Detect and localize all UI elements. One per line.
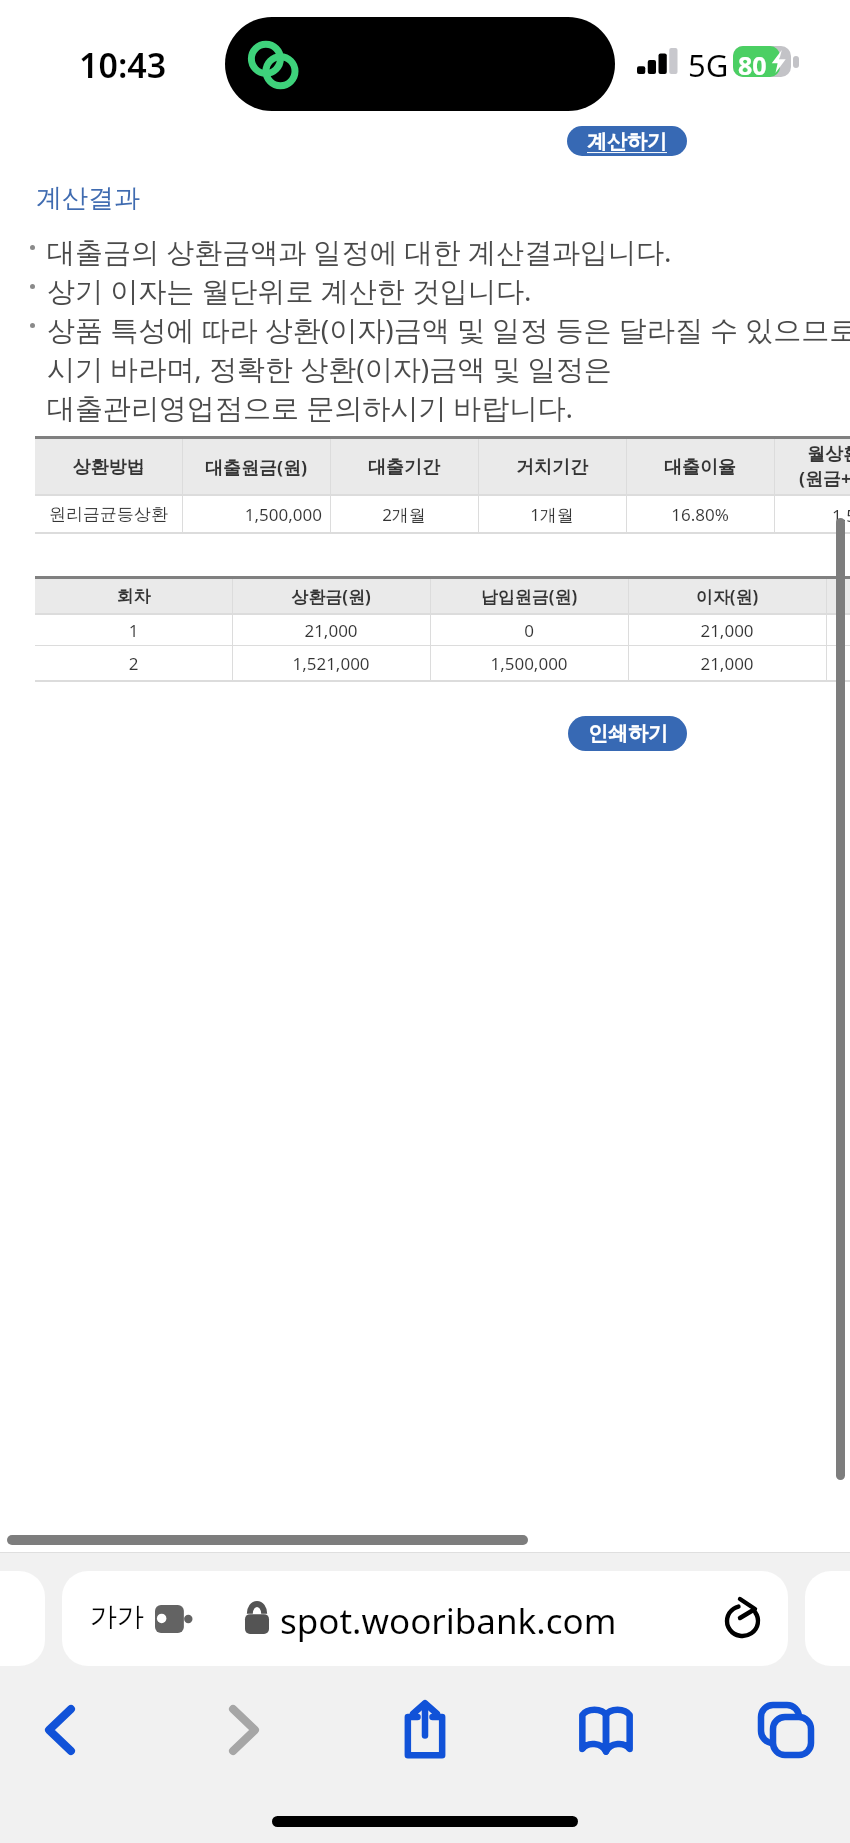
staticText: 대출기간 <box>330 456 478 479</box>
staticText: 16.80% <box>626 503 774 526</box>
staticText: 대출금의 상환금액과 일정에 대한 계산결과입니다. <box>47 232 672 270</box>
staticText: 시기 바라며, 정확한 상환(이자)금액 및 일정은 <box>47 349 612 387</box>
staticText: 원리금균등상환 <box>35 504 182 525</box>
other: Extensions <box>155 1605 192 1633</box>
staticText: 1 <box>35 619 232 642</box>
button[interactable]: 인쇄하기 <box>568 716 687 751</box>
staticText: 21,000 <box>628 652 826 675</box>
button[interactable]: Back <box>16 1686 104 1774</box>
staticText: 0 <box>430 619 628 642</box>
staticText: 상품 특성에 따라 상환(이자)금액 및 일정 등은 달라질 수 있으므로 <box>47 310 850 348</box>
staticText: 계산하기 <box>587 129 667 154</box>
button[interactable]: 가가 <box>62 1571 788 1666</box>
staticText: 2 <box>35 652 232 675</box>
staticText: 21,000 <box>232 619 430 642</box>
staticText: 5G <box>688 44 729 86</box>
staticText: 거치기간 <box>478 456 626 479</box>
staticText: 대출원금(원) <box>182 455 330 480</box>
staticText: 2개월 <box>330 503 478 526</box>
staticText: 1개월 <box>478 503 626 526</box>
staticText: 계산결과 <box>36 182 140 215</box>
staticText: 가가 <box>90 1600 144 1634</box>
button[interactable]: Forward <box>200 1686 288 1774</box>
staticText: 대출관리영업점으로 문의하시기 바랍니다. <box>47 388 574 426</box>
other: Reload <box>723 1596 765 1640</box>
button[interactable]: Bookmarks <box>562 1686 650 1774</box>
staticText: 10:43 <box>79 42 167 88</box>
staticText: 월상환금 <box>807 443 850 466</box>
staticText: 1,5 <box>832 504 850 527</box>
button[interactable]: Share <box>381 1686 469 1774</box>
staticText: 이자(원) <box>628 585 826 608</box>
staticText: 1,521,000 <box>232 652 430 675</box>
staticText: 1,500,000 <box>182 503 322 526</box>
staticText: 1,500,000 <box>430 652 628 675</box>
button[interactable]: Tabs <box>742 1686 830 1774</box>
staticText: 회차 <box>35 586 232 607</box>
staticText: 납입원금(원) <box>430 585 628 608</box>
button[interactable]: 계산하기 <box>567 126 687 156</box>
staticText: 상환금(원) <box>232 585 430 608</box>
staticText: 상기 이자는 월단위로 계산한 것입니다. <box>47 271 532 309</box>
staticText: 인쇄하기 <box>588 721 668 746</box>
staticText: 상환방법 <box>35 456 182 479</box>
staticText: spot.wooribank.com <box>280 1597 617 1645</box>
staticText: 21,000 <box>628 619 826 642</box>
staticText: (원금+이자) <box>799 466 850 491</box>
staticText: 80 <box>738 48 767 82</box>
staticText: 대출이율 <box>626 456 774 479</box>
